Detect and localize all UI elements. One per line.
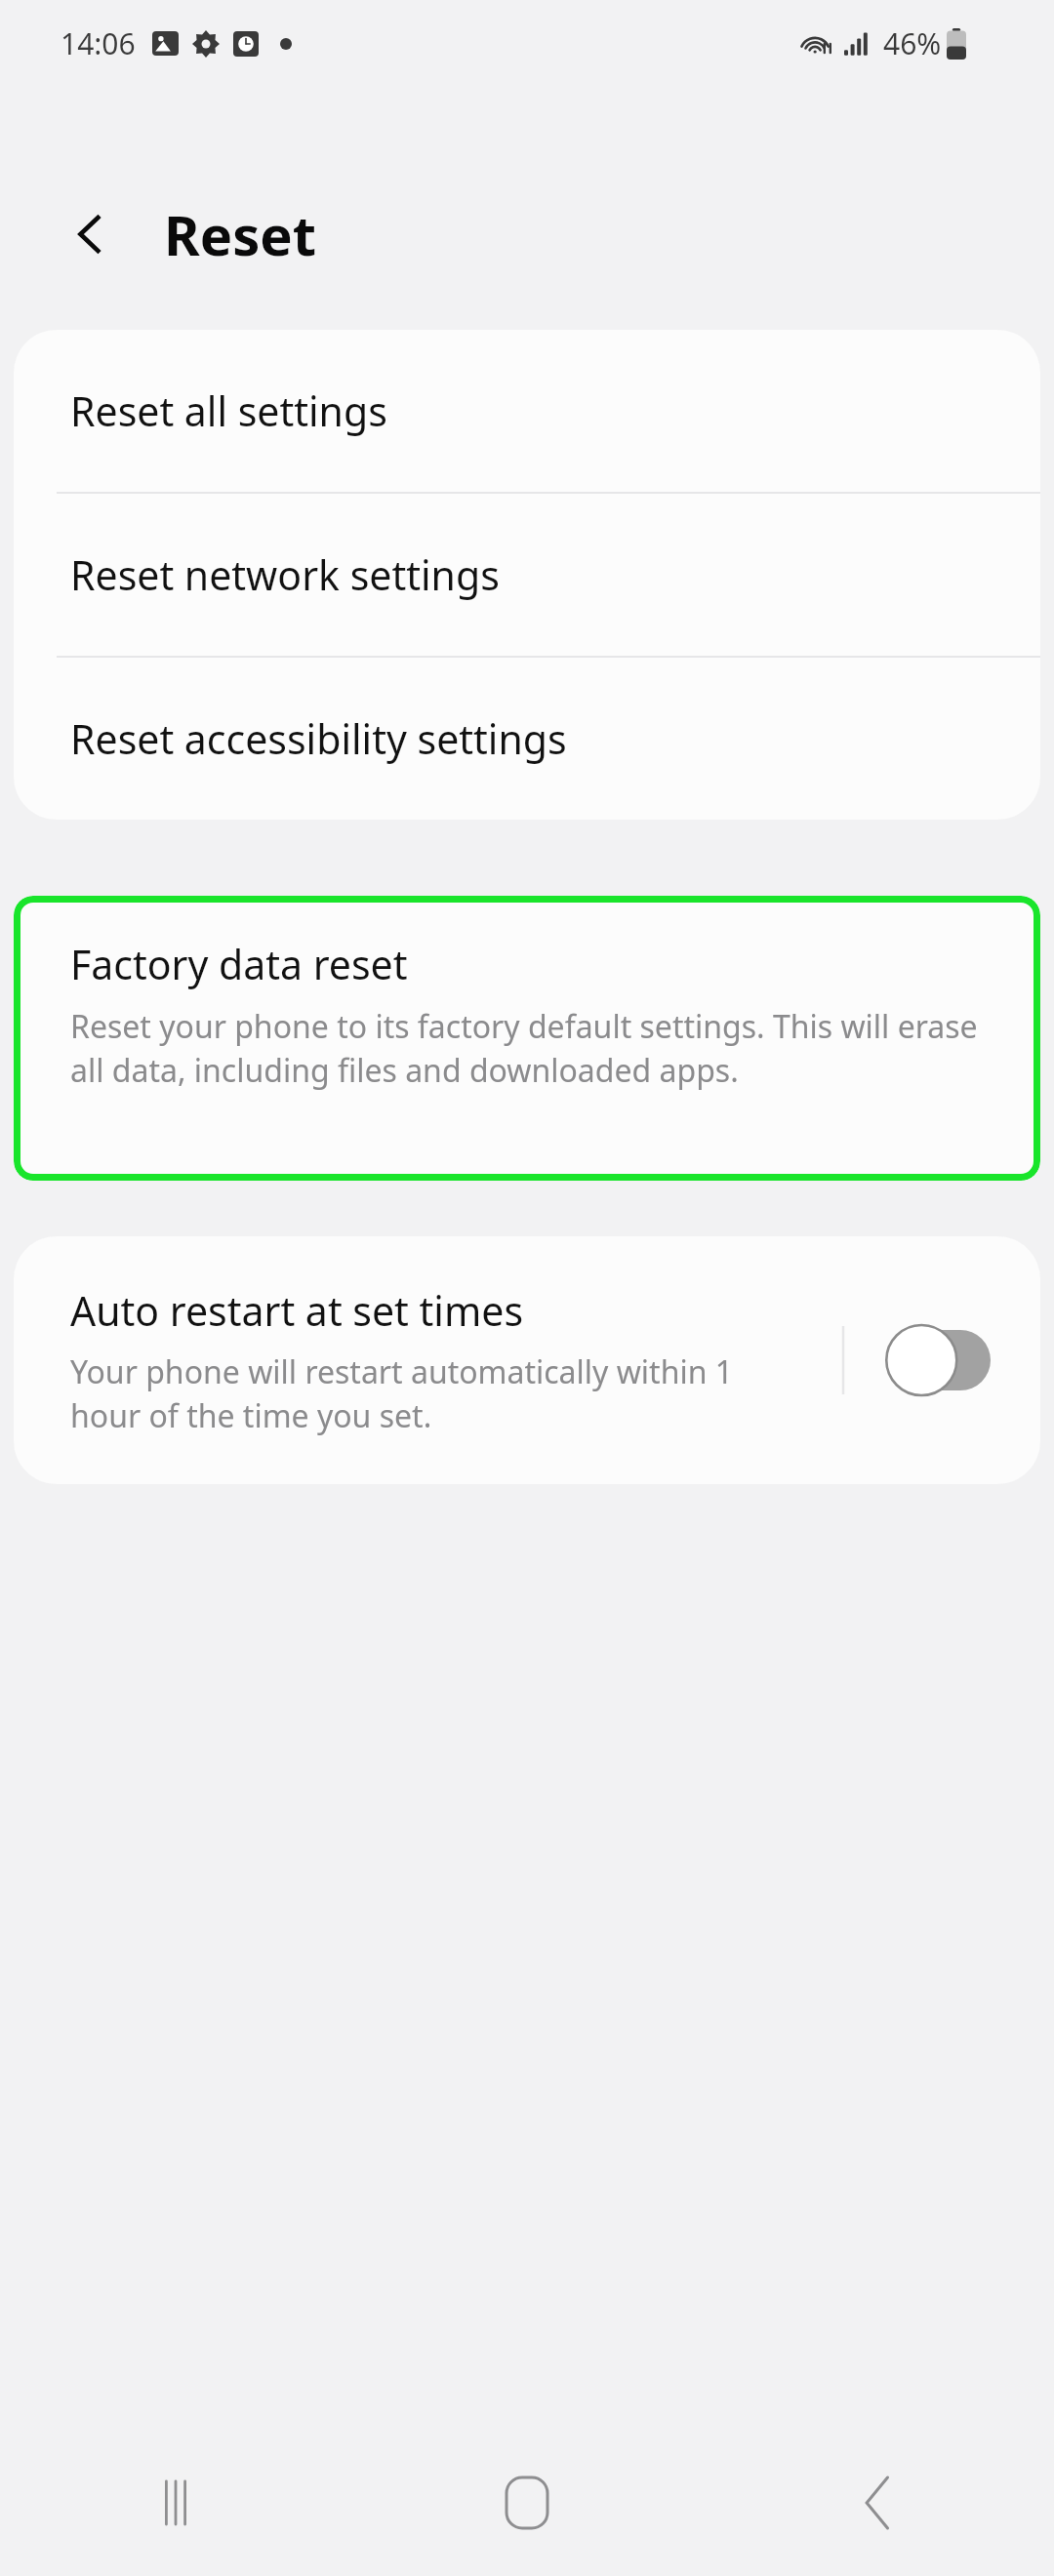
staticText: 14:06 — [61, 23, 136, 63]
button[interactable]: Auto restart at set times — [14, 1236, 1040, 1484]
staticText: 46% — [883, 23, 942, 63]
button[interactable]: Factory data reset — [14, 896, 1040, 1181]
button[interactable]: Recents — [0, 2430, 351, 2576]
button[interactable]: Back — [49, 192, 133, 276]
staticText: Reset accessibility settings — [70, 711, 567, 766]
button[interactable]: Reset network settings — [14, 494, 1040, 656]
button[interactable]: Auto restart toggle — [876, 1307, 1025, 1414]
staticText: Reset your phone to its factory default … — [70, 1005, 984, 1092]
staticText: Reset network settings — [70, 547, 500, 602]
staticText: Auto restart at set times — [70, 1283, 524, 1338]
button[interactable]: Reset accessibility settings — [14, 658, 1040, 820]
button[interactable]: Back — [703, 2430, 1054, 2576]
staticText: Reset all settings — [70, 383, 387, 438]
staticText: Factory data reset — [70, 937, 408, 991]
button[interactable]: Reset all settings — [14, 330, 1040, 492]
button[interactable]: Home — [351, 2430, 703, 2576]
staticText: Your phone will restart automatically wi… — [70, 1350, 798, 1437]
staticText: Reset — [164, 197, 317, 271]
